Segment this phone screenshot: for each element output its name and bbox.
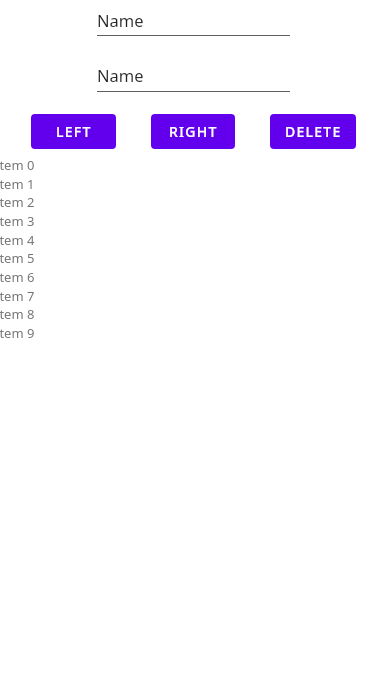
staticText: Item 5 bbox=[0, 249, 35, 267]
staticText: DELETE bbox=[285, 122, 342, 141]
button[interactable]: LEFT bbox=[31, 114, 116, 149]
staticText: Item 3 bbox=[0, 212, 35, 230]
button[interactable]: Item 3 bbox=[0, 212, 380, 231]
staticText: Item 4 bbox=[0, 231, 35, 249]
button[interactable]: Item 1 bbox=[0, 175, 380, 194]
staticText: RIGHT bbox=[169, 122, 218, 141]
staticText: Name bbox=[97, 9, 144, 31]
button[interactable]: Item 4 bbox=[0, 231, 380, 250]
button[interactable]: Name input field bbox=[97, 52, 290, 93]
staticText: Item 2 bbox=[0, 193, 35, 211]
button[interactable]: Item 7 bbox=[0, 287, 380, 306]
staticText: Item 0 bbox=[0, 156, 35, 174]
button[interactable]: Name input field bbox=[97, 0, 290, 37]
button[interactable]: RIGHT bbox=[151, 114, 235, 149]
button[interactable]: Item 9 bbox=[0, 324, 380, 343]
staticText: Item 9 bbox=[0, 324, 35, 342]
button[interactable]: Item 2 bbox=[0, 193, 380, 212]
button[interactable]: Item 0 bbox=[0, 156, 380, 175]
staticText: Item 1 bbox=[0, 175, 35, 193]
button[interactable]: DELETE bbox=[270, 114, 356, 149]
staticText: LEFT bbox=[56, 122, 92, 141]
button[interactable]: Item 6 bbox=[0, 268, 380, 287]
staticText: Item 8 bbox=[0, 305, 35, 323]
button[interactable]: Item 8 bbox=[0, 305, 380, 324]
staticText: Item 7 bbox=[0, 287, 35, 305]
staticText: Item 6 bbox=[0, 268, 35, 286]
button[interactable]: Item 5 bbox=[0, 249, 380, 268]
staticText: Name bbox=[97, 64, 144, 86]
